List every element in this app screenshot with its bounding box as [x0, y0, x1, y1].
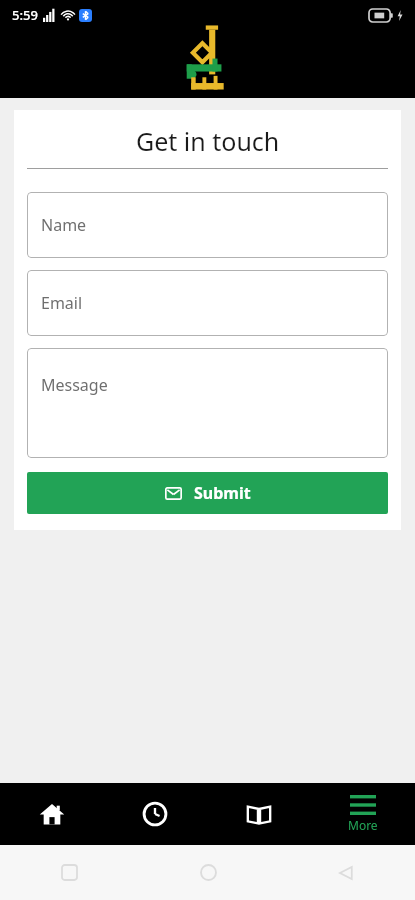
button[interactable]: Prayer times [103, 783, 207, 845]
button[interactable]: Quran [207, 783, 311, 845]
button[interactable]: Submit [27, 472, 388, 514]
button[interactable]: Home [0, 783, 103, 845]
staticText: Name [41, 214, 87, 236]
staticText: Get in touch [136, 124, 280, 158]
staticText: More [348, 817, 378, 833]
button[interactable]: Email [27, 270, 388, 336]
staticText: 5:59 [12, 6, 38, 24]
staticText: Submit [194, 482, 251, 504]
staticText: Email [41, 292, 83, 314]
button[interactable]: More [311, 783, 415, 845]
button[interactable]: Message [27, 348, 388, 458]
button[interactable]: Name [27, 192, 388, 258]
staticText: Message [41, 374, 108, 396]
